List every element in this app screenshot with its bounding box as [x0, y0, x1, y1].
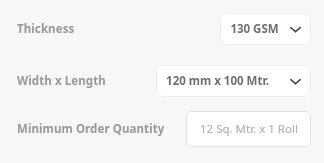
staticText: 130 GSM — [230, 21, 279, 37]
button[interactable]: 12 Sq. Mtr. x 1 Roll — [186, 111, 311, 147]
button[interactable]: Thickness, 130 GSM — [220, 13, 311, 45]
staticText: 120 mm x 100 Mtr. — [166, 73, 269, 89]
staticText: Width x Length — [17, 73, 106, 89]
staticText: 12 Sq. Mtr. x 1 Roll — [200, 121, 298, 137]
button[interactable]: Width x Length, 120 mm x 100 Mtr. — [156, 65, 311, 97]
staticText: Minimum Order Quantity — [17, 121, 165, 137]
staticText: Thickness — [17, 21, 75, 37]
